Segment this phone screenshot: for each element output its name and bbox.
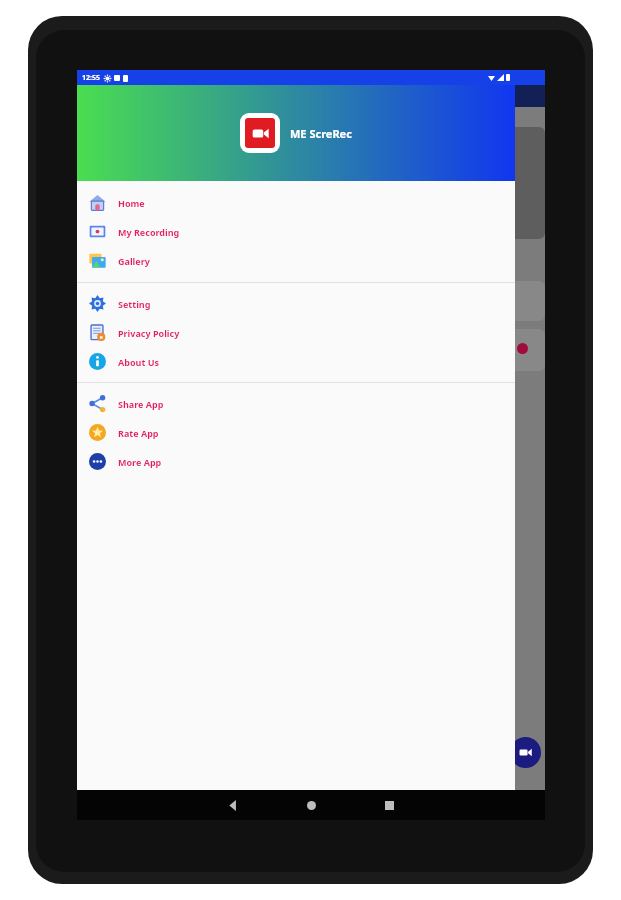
staticText: Privacy Policy (118, 327, 180, 339)
button[interactable]: Share App (77, 389, 515, 418)
staticText: Share App (118, 398, 164, 410)
staticText: Gallery (118, 255, 150, 267)
staticText: My Recording (118, 226, 180, 238)
button[interactable]: Record (510, 737, 541, 768)
staticText: Setting (118, 298, 151, 310)
button[interactable]: Gallery (77, 246, 515, 275)
button[interactable]: Setting (77, 289, 515, 318)
button[interactable]: More App (77, 447, 515, 476)
button[interactable]: Home (77, 188, 515, 217)
staticText: 12:55 (82, 73, 100, 83)
staticText: About Us (118, 356, 159, 368)
button[interactable]: Back (194, 790, 272, 820)
button[interactable]: My Recording (77, 217, 515, 246)
button[interactable]: Home (272, 790, 350, 820)
button[interactable]: Recent apps (350, 790, 428, 820)
button[interactable]: Privacy Policy (77, 318, 515, 347)
staticText: Rate App (118, 427, 159, 439)
staticText: ME ScreRec (290, 126, 352, 141)
staticText: More App (118, 456, 162, 468)
button[interactable]: About Us (77, 347, 515, 376)
button[interactable]: Rate App (77, 418, 515, 447)
staticText: Home (118, 197, 145, 209)
